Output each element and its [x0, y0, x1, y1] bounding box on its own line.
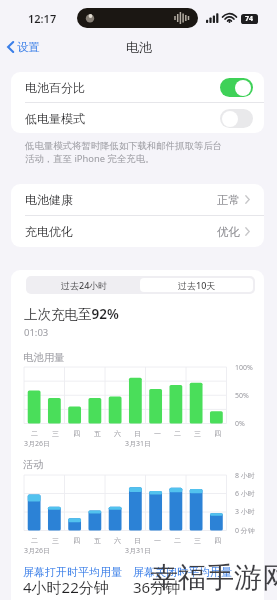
staticText: 上次充电至92% — [24, 305, 119, 323]
staticText: 三 — [52, 429, 59, 438]
staticText: 屏幕关闭时平均用量 — [133, 565, 232, 579]
staticText: 正常 — [217, 193, 240, 207]
button[interactable]: 充电优化 — [11, 216, 264, 247]
staticText: 二 — [174, 429, 181, 438]
staticText: 日 — [134, 536, 141, 545]
staticText: 电池健康 — [25, 192, 73, 207]
staticText: 四 — [214, 536, 221, 545]
staticText: 4小时22分钟 — [23, 577, 109, 597]
staticText: 屏幕打开时平均用量 — [23, 565, 122, 579]
staticText: 三 — [194, 429, 201, 438]
staticText: 3月31日 — [125, 439, 152, 449]
staticText: 优化 — [217, 225, 240, 239]
staticText: 3月31日 — [125, 546, 152, 556]
staticText: 电池用量 — [23, 351, 65, 364]
staticText: 二 — [31, 536, 38, 545]
staticText: 12:17 — [28, 11, 57, 26]
button[interactable]: 过去24小时 — [28, 278, 140, 292]
staticText: 6 小时 — [235, 489, 255, 499]
staticText: 电池百分比 — [25, 80, 85, 95]
staticText: 二 — [174, 536, 181, 545]
staticText: 3月26日 — [24, 439, 51, 449]
staticText: 01:03 — [24, 326, 49, 339]
staticText: 3 小时 — [235, 507, 255, 517]
staticText: 100% — [235, 363, 253, 373]
staticText: 充电优化 — [25, 224, 73, 239]
staticText: 低电量模式 — [25, 111, 85, 126]
staticText: 一 — [154, 536, 161, 545]
staticText: 电池 — [126, 39, 152, 55]
staticText: 活动 — [23, 458, 44, 471]
staticText: 六 — [114, 429, 121, 438]
button[interactable]: 过去10天 — [140, 278, 253, 292]
button[interactable]: 设置 — [0, 37, 46, 57]
staticText: 74 — [245, 14, 254, 24]
staticText: 设置 — [17, 40, 40, 54]
button[interactable]: 电池健康 — [11, 184, 264, 215]
staticText: 三 — [52, 536, 59, 545]
button[interactable]: 低电量模式 — [11, 103, 264, 133]
staticText: 六 — [114, 536, 121, 545]
staticText: 过去10天 — [178, 279, 216, 291]
staticText: 四 — [73, 536, 80, 545]
button[interactable]: 电池百分比 — [11, 72, 264, 102]
staticText: 36分钟 — [133, 577, 181, 597]
staticText: 日 — [134, 429, 141, 438]
staticText: 四 — [214, 429, 221, 438]
staticText: 二 — [31, 429, 38, 438]
staticText: 3月26日 — [24, 546, 51, 556]
staticText: 50% — [235, 391, 249, 401]
staticText: 三 — [194, 536, 201, 545]
staticText: 五 — [94, 429, 101, 438]
staticText: 0 分钟 — [235, 526, 255, 536]
staticText: 过去24小时 — [61, 279, 108, 291]
staticText: 0% — [235, 419, 245, 429]
staticText: 8 小时 — [235, 471, 255, 481]
staticText: 幸福手游网 — [150, 560, 277, 595]
staticText: 一 — [154, 429, 161, 438]
staticText: 五 — [94, 536, 101, 545]
staticText: 四 — [73, 429, 80, 438]
staticText: 低电量模式将暂时降低如下载和邮件抓取等后台活动，直至 iPhone 完全充电。 — [25, 140, 226, 165]
